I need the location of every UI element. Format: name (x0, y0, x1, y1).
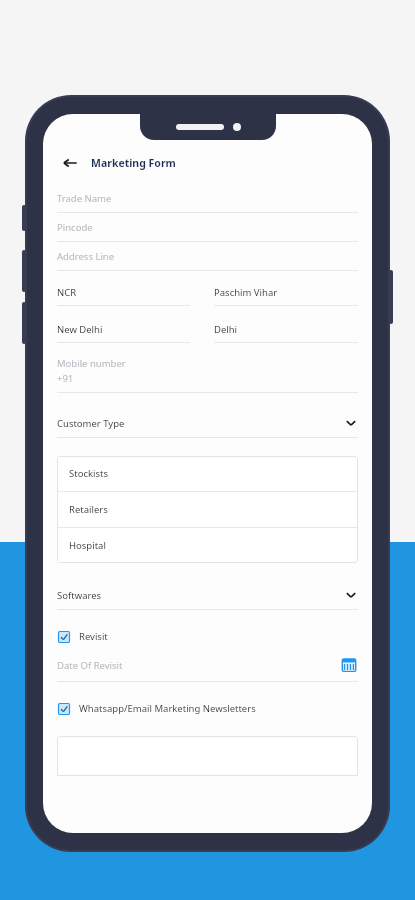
button[interactable]: Stockists (57, 456, 358, 491)
staticText: Mobile number (57, 357, 126, 370)
button[interactable]: Whatsapp/Email Marketing Newsletters (57, 698, 358, 718)
button[interactable]: Address Line (57, 242, 358, 271)
button[interactable]: Retailers (57, 492, 358, 527)
staticText: Date Of Revisit (57, 659, 123, 672)
button[interactable]: Back (57, 150, 83, 176)
staticText: Softwares (57, 589, 102, 602)
button[interactable]: Delhi (214, 316, 358, 343)
button[interactable]: Mobile number (57, 357, 358, 393)
button[interactable]: Customer Type (57, 409, 358, 438)
staticText: Paschim Vihar (214, 286, 278, 299)
staticText: NCR (57, 286, 77, 299)
button[interactable]: NCR (57, 279, 190, 306)
button[interactable]: Hospital (57, 528, 358, 563)
staticText: Stockists (69, 467, 109, 480)
button[interactable]: Paschim Vihar (214, 279, 358, 306)
staticText: Customer Type (57, 417, 125, 430)
staticText: Pincode (57, 221, 93, 234)
staticText: New Delhi (57, 323, 103, 336)
staticText: +91 (57, 372, 74, 385)
staticText: Retailers (69, 503, 108, 516)
staticText: Delhi (214, 323, 238, 336)
button[interactable] (57, 736, 358, 776)
button[interactable]: New Delhi (57, 316, 190, 343)
staticText: Marketing Form (91, 156, 176, 170)
button[interactable]: Date Of Revisit (57, 654, 358, 682)
button[interactable]: Revisit (57, 626, 358, 646)
staticText: Revisit (79, 630, 108, 643)
staticText: Whatsapp/Email Marketing Newsletters (79, 702, 256, 715)
staticText: Trade Name (57, 192, 112, 205)
other: Pick date (340, 656, 358, 674)
staticText: Hospital (69, 539, 106, 552)
button[interactable]: Softwares (57, 581, 358, 610)
button[interactable]: Pincode (57, 213, 358, 242)
staticText: Address Line (57, 250, 115, 263)
button[interactable]: Trade Name (57, 184, 358, 213)
